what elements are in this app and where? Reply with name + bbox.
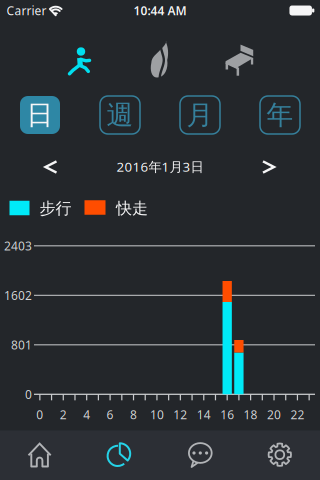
staticText: 10:44 AM: [133, 3, 186, 19]
button[interactable]: 年: [260, 96, 300, 134]
staticText: 12: [173, 406, 187, 422]
staticText: 10: [150, 406, 164, 422]
staticText: 18: [244, 406, 258, 422]
staticText: 22: [290, 406, 304, 422]
staticText: 2403: [4, 238, 32, 254]
staticText: 14: [197, 406, 211, 422]
button[interactable]: Messages: [161, 431, 239, 480]
staticText: 16: [220, 406, 234, 422]
button[interactable]: Calories: [133, 37, 185, 81]
staticText: 日: [26, 99, 53, 131]
staticText: 4: [83, 406, 90, 422]
button[interactable]: Sleep: [214, 37, 266, 81]
staticText: 2: [60, 406, 67, 422]
button[interactable]: Steps: [52, 37, 104, 81]
button[interactable]: 月: [180, 96, 220, 134]
staticText: 月: [186, 99, 213, 131]
staticText: 0: [36, 406, 43, 422]
staticText: 快走: [116, 199, 148, 218]
staticText: 6: [107, 406, 114, 422]
staticText: 801: [11, 337, 32, 353]
staticText: 步行: [39, 199, 71, 218]
button[interactable]: 週: [100, 96, 140, 134]
staticText: 2016年1月3日: [116, 158, 203, 175]
button[interactable]: Next day: [254, 152, 284, 182]
staticText: 8: [130, 406, 137, 422]
staticText: 20: [267, 406, 281, 422]
button[interactable]: Previous day: [35, 152, 65, 182]
button[interactable]: Settings: [241, 431, 319, 480]
button[interactable]: 日: [20, 96, 60, 134]
staticText: Carrier: [6, 3, 46, 19]
staticText: 1602: [4, 287, 32, 303]
staticText: 年: [266, 99, 293, 131]
staticText: 0: [25, 386, 32, 402]
staticText: 週: [106, 99, 133, 131]
button[interactable]: Statistics: [81, 431, 159, 480]
button[interactable]: Home: [1, 431, 79, 480]
